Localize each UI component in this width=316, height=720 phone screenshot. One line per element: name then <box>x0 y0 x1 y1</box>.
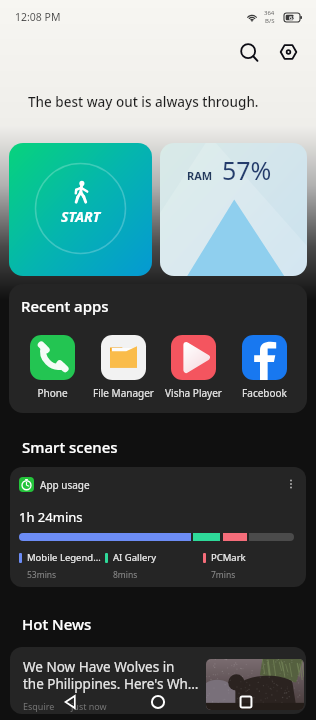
staticText: just now <box>71 700 107 712</box>
staticText: 63 <box>289 14 296 22</box>
button[interactable]: Settings <box>271 35 305 69</box>
button[interactable]: More options <box>280 473 302 495</box>
button[interactable]: START <box>9 143 152 276</box>
button[interactable]: Visha Player <box>162 335 224 400</box>
staticText: 7mins <box>211 569 236 581</box>
staticText: Phone <box>37 386 68 400</box>
button[interactable]: App usage <box>10 467 306 587</box>
staticText: 8mins <box>113 569 138 581</box>
staticText: Esquire <box>23 700 55 712</box>
button[interactable]: Back <box>52 684 88 720</box>
staticText: B/S <box>265 17 275 25</box>
staticText: PCMark <box>211 551 246 564</box>
button[interactable]: RAM <box>160 143 307 276</box>
staticText: RAM <box>187 168 213 183</box>
staticText: 12:08 PM <box>15 10 61 24</box>
staticText: Hot News <box>22 614 92 634</box>
button[interactable]: File Manager <box>92 335 154 400</box>
button[interactable]: Phone <box>21 335 83 400</box>
button[interactable]: Facebook <box>233 335 295 400</box>
staticText: 1h 24mins <box>19 508 83 526</box>
staticText: Visha Player <box>165 386 222 400</box>
staticText: 53mins <box>27 569 57 581</box>
staticText: Mobile Legend… <box>27 551 101 564</box>
staticText: We Now Have Wolves in the Philippines. H… <box>23 658 199 693</box>
staticText: START <box>61 207 101 226</box>
staticText: Facebook <box>242 386 287 400</box>
button[interactable]: We Now Have Wolves in the Philippines. H… <box>10 647 306 714</box>
staticText: 364 <box>264 9 275 17</box>
staticText: File Manager <box>93 386 154 400</box>
button[interactable]: Search <box>232 35 266 69</box>
staticText: Recent apps <box>21 296 109 316</box>
staticText: The best way out is always through. <box>28 93 259 111</box>
staticText: Smart scenes <box>22 437 118 457</box>
button[interactable]: Recents <box>228 684 264 720</box>
staticText: App usage <box>40 478 90 492</box>
staticText: 57% <box>222 153 272 187</box>
staticText: AI Gallery <box>113 551 157 564</box>
button[interactable]: Home <box>140 684 176 720</box>
